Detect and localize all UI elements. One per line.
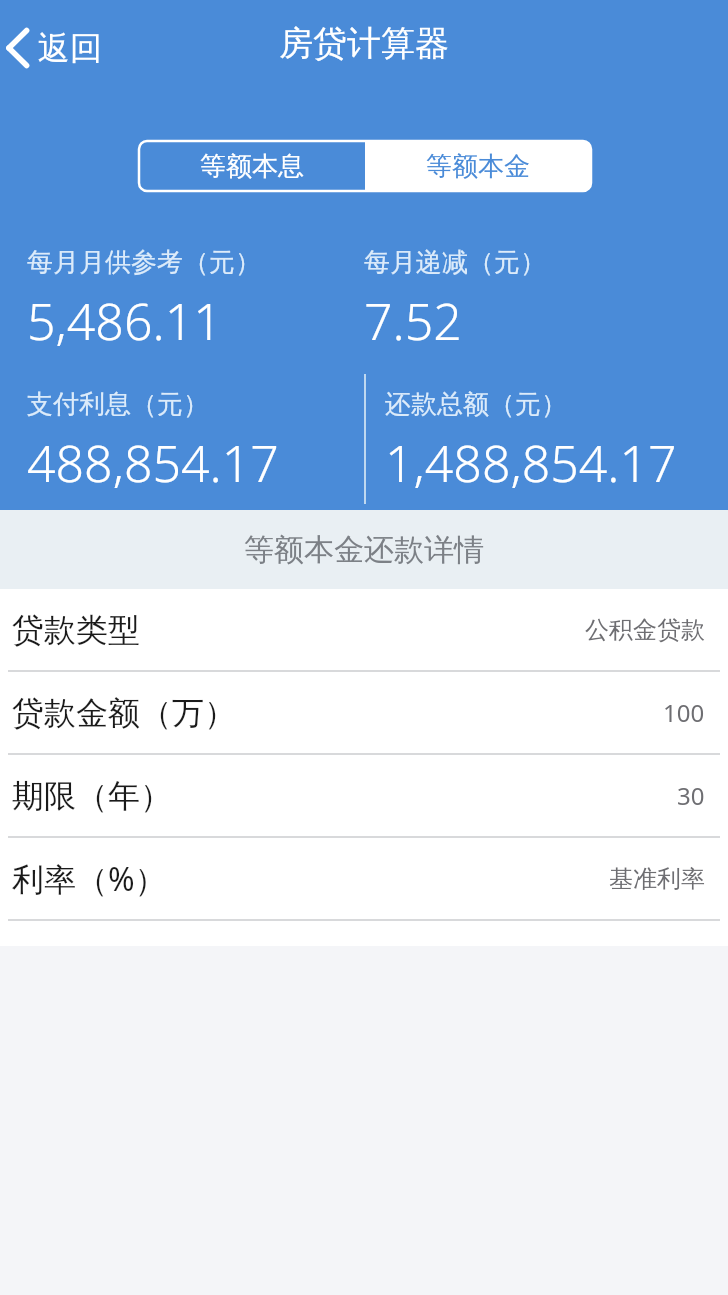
button[interactable]: 返回 [0, 18, 130, 78]
staticText: 30 [677, 779, 705, 812]
button[interactable]: 利率（%） [0, 838, 728, 919]
staticText: 公积金贷款 [585, 615, 705, 645]
staticText: 488,854.17 [27, 429, 279, 497]
button[interactable]: 贷款金额（万） [0, 672, 728, 753]
button[interactable]: 贷款类型 [0, 589, 728, 670]
staticText: 每月月供参考（元） [27, 246, 261, 279]
staticText: 7.52 [364, 287, 462, 355]
staticText: 返回 [38, 28, 102, 68]
button[interactable]: 等额本息 [139, 141, 365, 191]
staticText: 贷款金额（万） [12, 693, 236, 733]
staticText: 支付利息（元） [27, 388, 209, 421]
staticText: 利率（%） [12, 857, 167, 901]
staticText: 等额本息 [200, 150, 304, 183]
staticText: 等额本金还款详情 [244, 531, 484, 569]
staticText: 100 [663, 696, 705, 729]
staticText: 房贷计算器 [279, 22, 449, 65]
button[interactable]: 等额本金 [365, 141, 591, 191]
staticText: 还款总额（元） [385, 388, 567, 421]
button[interactable]: 期限（年） [0, 755, 728, 836]
staticText: 基准利率 [609, 864, 705, 894]
staticText: 5,486.11 [27, 287, 222, 355]
staticText: 期限（年） [12, 776, 172, 816]
staticText: 等额本金 [426, 150, 530, 183]
staticText: 1,488,854.17 [385, 429, 677, 497]
staticText: 每月递减（元） [364, 246, 546, 279]
staticText: 贷款类型 [12, 610, 140, 650]
